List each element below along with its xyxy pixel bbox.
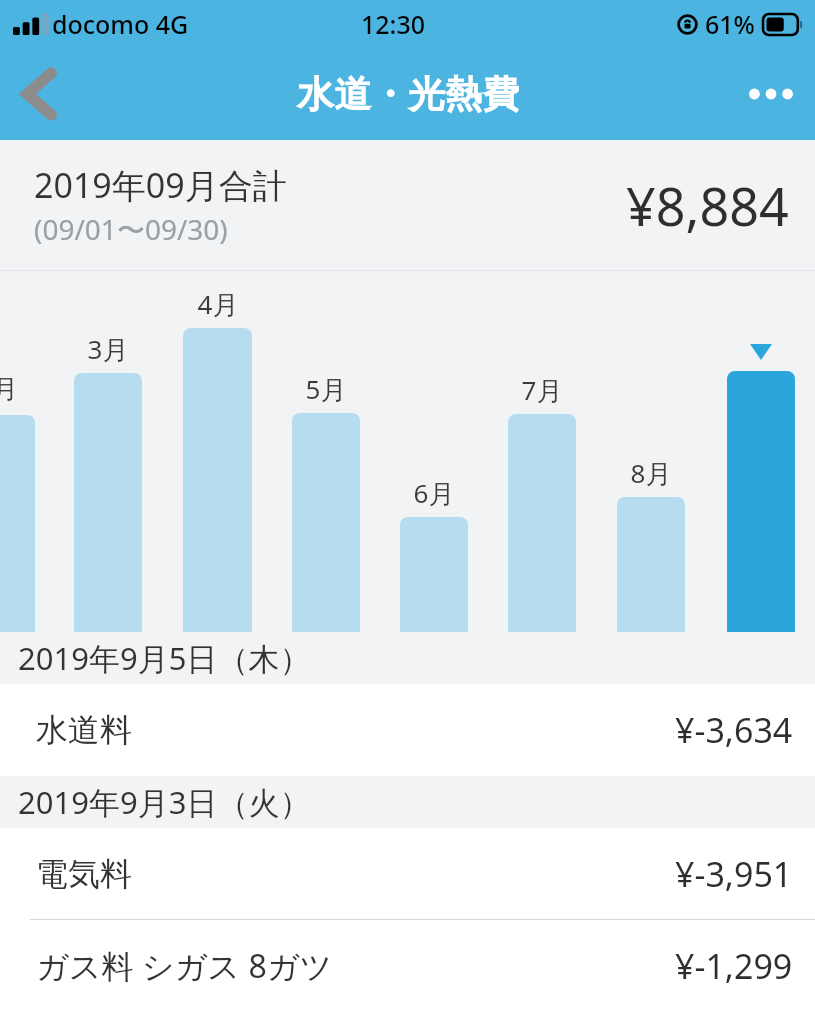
staticText: 5月 — [281, 371, 371, 407]
staticText: ¥-1,299 — [675, 943, 793, 989]
staticText: 7月 — [497, 372, 587, 408]
staticText: 4月 — [173, 286, 263, 322]
staticText: 2019年09月合計 — [34, 162, 287, 208]
staticText: 3月 — [63, 331, 153, 367]
staticText: ¥8,884 — [626, 170, 789, 241]
staticText: 61% — [705, 7, 755, 41]
staticText: ¥-3,951 — [675, 851, 793, 897]
button[interactable]: 電気料 — [0, 828, 815, 919]
button[interactable]: More options — [727, 48, 815, 140]
staticText: 12:30 — [361, 7, 426, 41]
staticText: 水道料 — [36, 710, 132, 750]
staticText: ガス料 シガス 8ガツ — [36, 944, 333, 988]
button[interactable]: Back — [0, 48, 78, 140]
staticText: 電気料 — [36, 854, 132, 894]
staticText: ¥-3,634 — [675, 707, 793, 753]
staticText: 月 — [0, 373, 50, 406]
button[interactable]: ガス料 シガス 8ガツ — [0, 920, 815, 1012]
button[interactable]: 水道料 — [0, 684, 815, 776]
staticText: docomo 4G — [52, 7, 189, 41]
staticText: 2019年9月3日（火） — [18, 781, 311, 823]
staticText: (09/01〜09/30) — [34, 210, 228, 248]
staticText: 2019年9月5日（木） — [18, 637, 311, 679]
staticText: 水道・光熱費 — [297, 71, 519, 118]
staticText: 6月 — [389, 475, 479, 511]
staticText: 8月 — [606, 455, 696, 491]
